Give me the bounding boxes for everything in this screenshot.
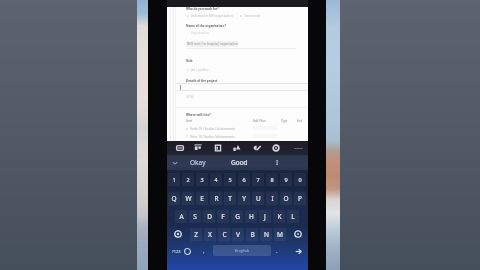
- button[interactable]: U: [252, 192, 264, 205]
- staticText: ,: [203, 247, 205, 255]
- staticText: A: [179, 212, 184, 221]
- button[interactable]: L: [287, 210, 299, 223]
- staticText: I: [271, 194, 274, 203]
- staticText: O: [283, 194, 289, 203]
- staticText: Name of the organisation*: [186, 24, 227, 28]
- staticText: G: [235, 212, 240, 221]
- button[interactable]: English: [213, 245, 271, 256]
- staticText: Under 18 / Studies / Achievements: [190, 127, 236, 131]
- button[interactable]: Q: [168, 192, 180, 205]
- button[interactable]: G: [231, 210, 243, 223]
- staticText: Y: [242, 194, 246, 203]
- staticText: English: [235, 248, 250, 254]
- button[interactable]: Emoji: [182, 244, 193, 258]
- button[interactable]: I: [266, 192, 278, 205]
- button[interactable]: Backspace: [287, 227, 308, 241]
- staticText: T: [228, 194, 232, 203]
- staticText: Organisation: [191, 31, 209, 35]
- button[interactable]: F: [217, 210, 229, 223]
- button[interactable]: H: [245, 210, 257, 223]
- staticText: 2: [186, 176, 190, 183]
- button[interactable]: Symbols: [168, 244, 185, 258]
- button[interactable]: Notes: [212, 141, 224, 155]
- button[interactable]: GIF: [231, 141, 243, 155]
- button[interactable]: NHS trust / or hospital, organisation: [186, 41, 238, 47]
- staticText: Commercial: [244, 14, 261, 18]
- staticText: P: [298, 194, 302, 203]
- button[interactable]: D: [203, 210, 215, 223]
- button[interactable]: I: [263, 155, 291, 170]
- staticText: Good: [231, 158, 248, 167]
- button[interactable]: 7: [252, 173, 264, 186]
- button[interactable]: O: [280, 192, 292, 205]
- staticText: X: [208, 230, 212, 239]
- button[interactable]: Z: [190, 228, 202, 241]
- staticText: Start: [186, 119, 193, 123]
- staticText: .: [276, 247, 278, 255]
- staticText: M: [277, 230, 283, 239]
- button[interactable]: C: [218, 228, 230, 241]
- staticText: R: [214, 194, 219, 203]
- button[interactable]: N: [260, 228, 272, 241]
- staticText: Add Place: [253, 119, 266, 123]
- button[interactable]: Clipboard: [174, 141, 186, 155]
- button[interactable]: Enter: [291, 244, 305, 258]
- button[interactable]: Good: [224, 155, 254, 170]
- button[interactable]: 0: [294, 173, 306, 186]
- button[interactable]: Okay: [183, 155, 213, 170]
- button[interactable]: 4: [210, 173, 222, 186]
- staticText: D: [207, 212, 212, 221]
- staticText: 9: [284, 176, 288, 183]
- button[interactable]: 6: [238, 173, 250, 186]
- button[interactable]: R: [210, 192, 222, 205]
- button[interactable]: T: [224, 192, 236, 205]
- button[interactable]: M: [274, 228, 286, 241]
- staticText: J: [264, 212, 266, 221]
- button[interactable]: 5: [224, 173, 236, 186]
- button[interactable]: S: [189, 210, 201, 223]
- staticText: K: [277, 212, 282, 221]
- staticText: NHS trust / or hospital, organisation: [187, 42, 238, 46]
- staticText: 8: [270, 176, 274, 183]
- staticText: S: [193, 212, 197, 221]
- staticText: Role: [186, 59, 193, 63]
- button[interactable]: Comma: [198, 244, 209, 258]
- button[interactable]: V: [232, 228, 244, 241]
- button[interactable]: More: [290, 141, 306, 155]
- staticText: 0 / 50: [186, 95, 194, 99]
- button[interactable]: Shift: [167, 227, 189, 241]
- button[interactable]: Sticker: [251, 141, 263, 155]
- button[interactable]: 9: [280, 173, 292, 186]
- button[interactable]: Expand suggestions: [170, 155, 179, 170]
- button[interactable]: Settings: [270, 141, 282, 155]
- staticText: N: [264, 230, 269, 239]
- button[interactable]: 1: [168, 173, 180, 186]
- button[interactable]: 3: [196, 173, 208, 186]
- staticText: 0: [298, 176, 302, 183]
- staticText: Other 18 / Studies / Achievements: [190, 135, 235, 139]
- staticText: B: [250, 230, 255, 239]
- button[interactable]: 2: [182, 173, 194, 186]
- staticText: L: [291, 212, 295, 221]
- staticText: 3: [200, 176, 204, 183]
- button[interactable]: Translate: [192, 141, 204, 155]
- staticText: Job / position: [191, 68, 209, 72]
- button[interactable]: K: [273, 210, 285, 223]
- button[interactable]: B: [246, 228, 258, 241]
- button[interactable]: Y: [238, 192, 250, 205]
- staticText: Who do you work for?: [186, 7, 219, 11]
- staticText: V: [236, 230, 240, 239]
- button[interactable]: 8: [266, 173, 278, 186]
- button[interactable]: W: [182, 192, 194, 205]
- staticText: Details of the project: [186, 79, 218, 83]
- button[interactable]: E: [196, 192, 208, 205]
- staticText: End: [297, 119, 303, 123]
- button[interactable]: P: [294, 192, 306, 205]
- button[interactable]: J: [259, 210, 271, 223]
- button[interactable]: A: [175, 210, 187, 223]
- staticText: Z: [194, 230, 198, 239]
- button[interactable]: X: [204, 228, 216, 241]
- staticText: 7: [256, 176, 260, 183]
- staticText: H: [249, 212, 254, 221]
- button[interactable]: Period: [271, 244, 282, 258]
